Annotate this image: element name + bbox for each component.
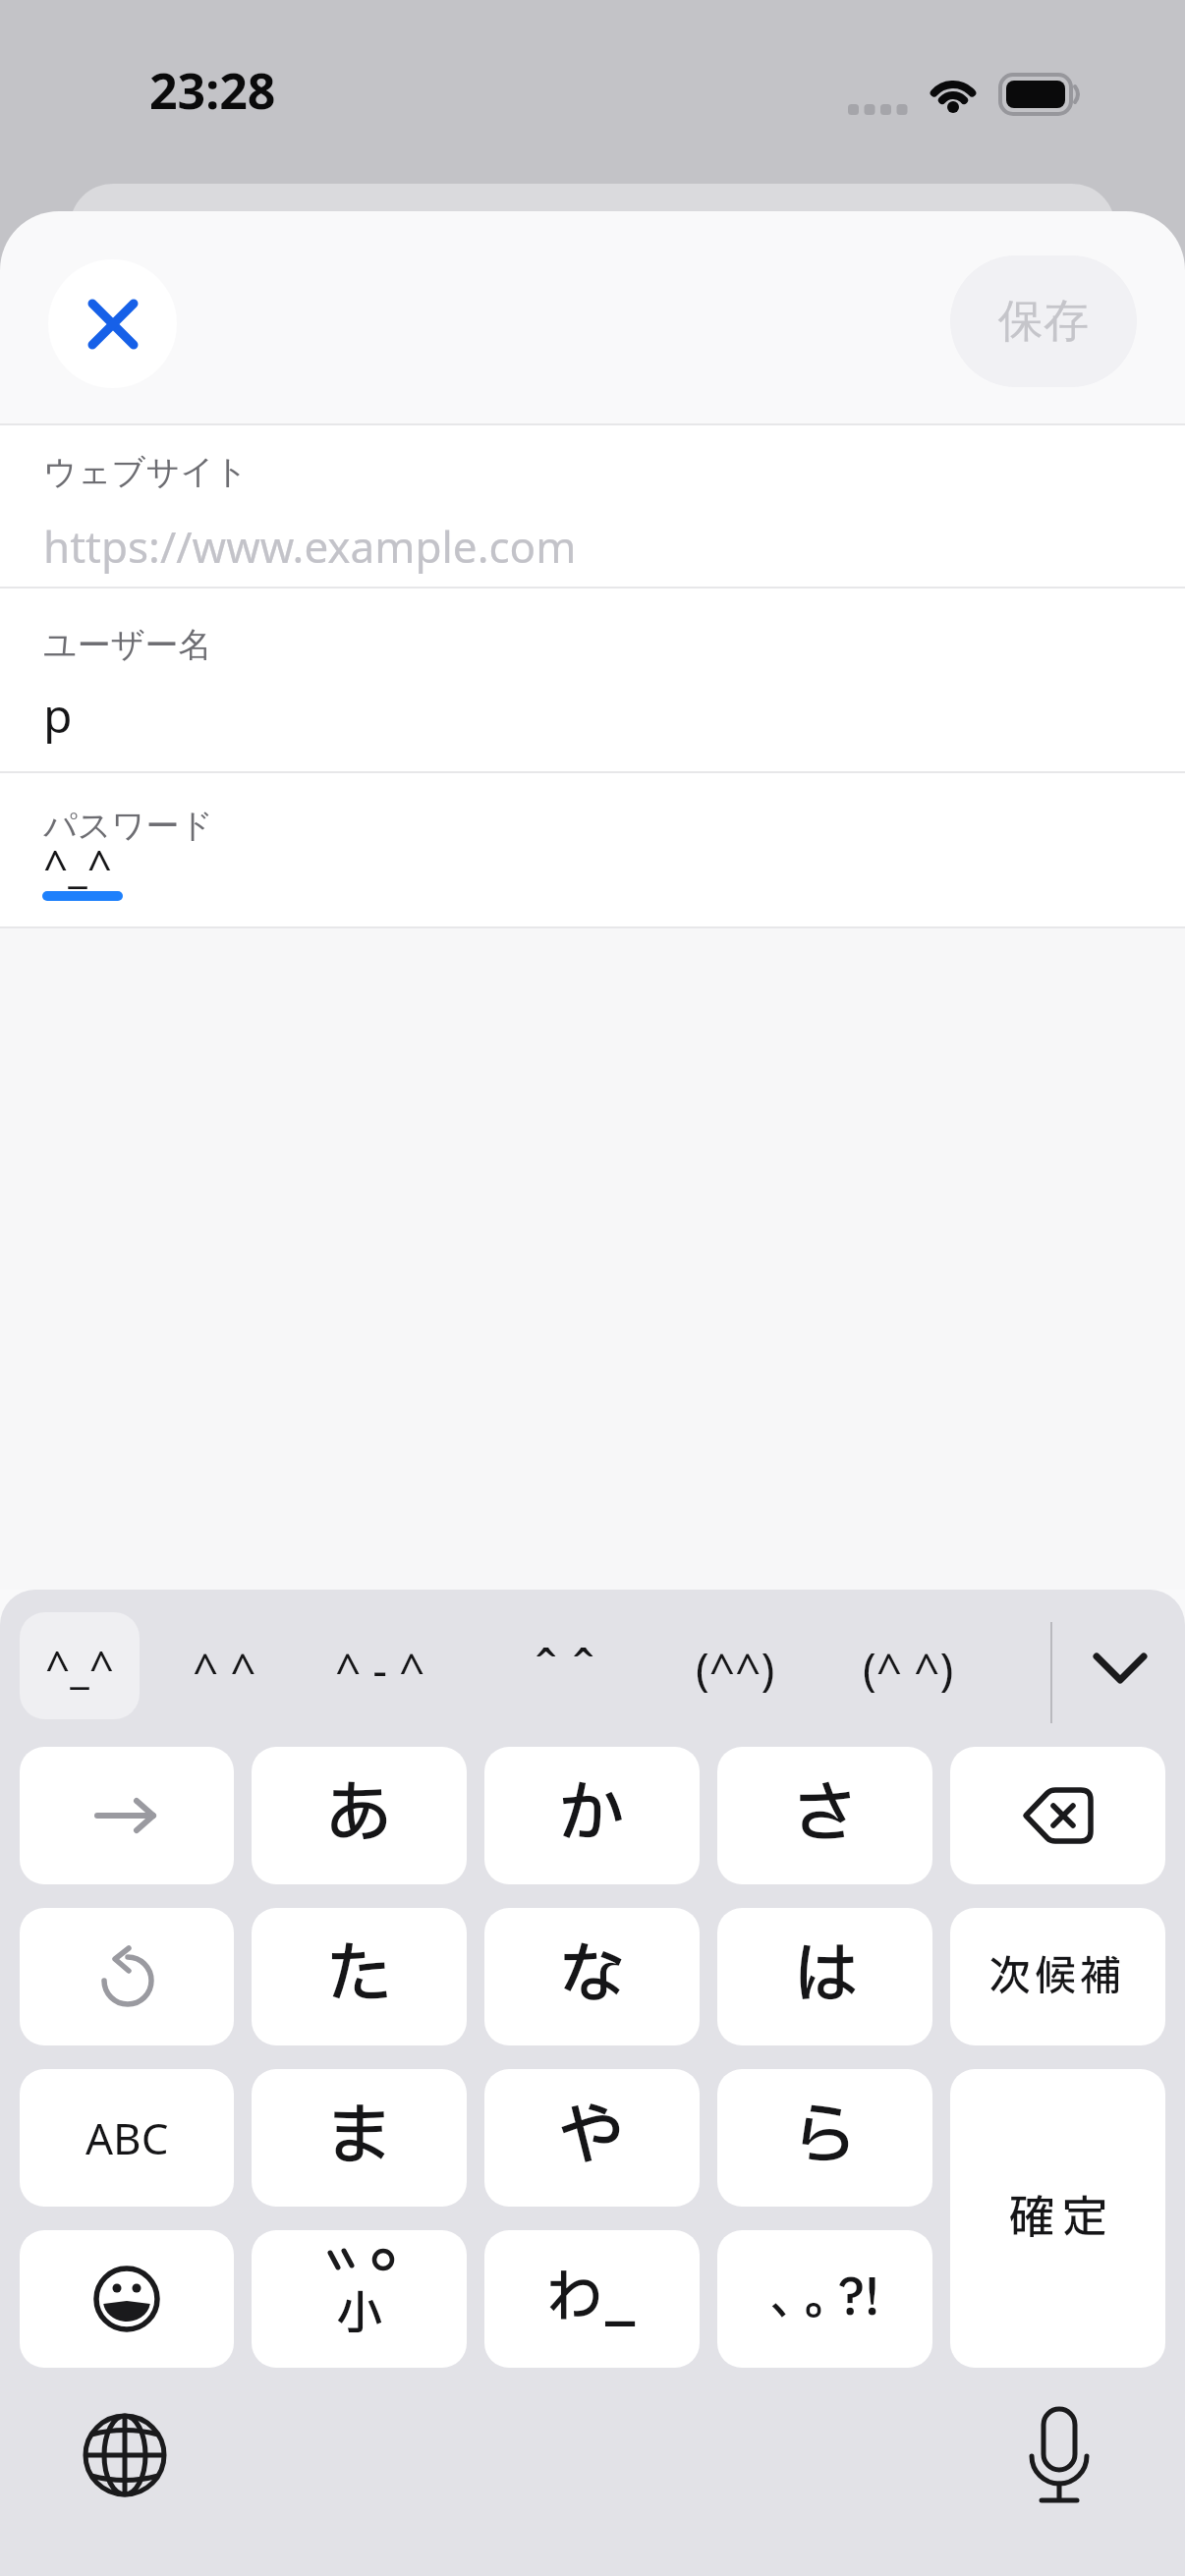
staticText: ABC [85, 2108, 169, 2167]
button[interactable]: さ [717, 1747, 932, 1884]
button[interactable]: ユーザー名 [0, 588, 1185, 771]
button[interactable]: わ_ [484, 2230, 700, 2368]
staticText: パスワード [43, 805, 214, 847]
staticText: さ [791, 1765, 859, 1866]
staticText: ユーザー名 [43, 624, 212, 666]
staticText: ^_^ [43, 836, 112, 895]
staticText: は [791, 1927, 859, 2027]
button[interactable] [20, 2230, 234, 2368]
staticText: や [558, 2088, 626, 2188]
button[interactable] [48, 259, 177, 388]
staticText: 保存 [998, 293, 1089, 350]
button[interactable] [20, 1747, 234, 1884]
staticText: ^ - ^ [335, 1638, 425, 1700]
button[interactable] [20, 1908, 234, 2045]
staticText: 確定 [1005, 2185, 1111, 2253]
button[interactable]: か [484, 1747, 700, 1884]
staticText: わ_ [546, 2257, 638, 2342]
staticText: https://www.example.com [43, 517, 577, 576]
staticText: な [558, 1927, 626, 2027]
button[interactable]: ^_^ [20, 1612, 140, 1719]
staticText: ?! [838, 2261, 880, 2337]
staticText: か [558, 1765, 626, 1866]
button[interactable]: 小 [252, 2230, 467, 2368]
button[interactable]: や [484, 2069, 700, 2207]
button[interactable]: は [717, 1908, 932, 2045]
staticText: 、。 [770, 2264, 838, 2334]
button[interactable]: ABC [20, 2069, 234, 2207]
staticText: p [43, 683, 73, 747]
button[interactable]: ^ ^ [193, 1619, 256, 1717]
staticText: ま [325, 2088, 393, 2188]
staticText: ウェブサイト [43, 451, 249, 493]
staticText: ら [791, 2088, 859, 2188]
staticText: ^ ^ [193, 1638, 256, 1700]
button[interactable]: 確定 [950, 2069, 1165, 2368]
staticText: ˆ ˆ [535, 1631, 595, 1706]
staticText: た [325, 1927, 393, 2027]
button[interactable]: ˆ ˆ [535, 1619, 595, 1717]
button[interactable] [950, 1747, 1165, 1884]
button[interactable]: 次候補 [950, 1908, 1165, 2045]
button[interactable]: 、。 [717, 2230, 932, 2368]
button[interactable]: た [252, 1908, 467, 2045]
staticText: 23:28 [149, 57, 276, 124]
button[interactable]: パスワード [0, 773, 1185, 926]
staticText: 次候補 [989, 1946, 1126, 2008]
button[interactable]: (^^) [696, 1619, 775, 1717]
button[interactable]: ら [717, 2069, 932, 2207]
staticText: 小 [336, 2280, 384, 2351]
staticText: (^^) [696, 1638, 775, 1700]
button[interactable]: ^ - ^ [335, 1619, 425, 1717]
button[interactable] [1022, 2407, 1097, 2515]
button[interactable] [83, 2413, 167, 2497]
button[interactable]: ウェブサイト [0, 425, 1185, 587]
button[interactable]: 保存 [950, 255, 1137, 387]
staticText: (^ ^) [863, 1638, 954, 1700]
button[interactable]: ま [252, 2069, 467, 2207]
staticText: ^_^ [45, 1637, 114, 1696]
button[interactable] [1081, 1637, 1159, 1700]
staticText: あ [325, 1765, 393, 1866]
button[interactable]: あ [252, 1747, 467, 1884]
button[interactable]: (^ ^) [863, 1619, 954, 1717]
button[interactable]: な [484, 1908, 700, 2045]
